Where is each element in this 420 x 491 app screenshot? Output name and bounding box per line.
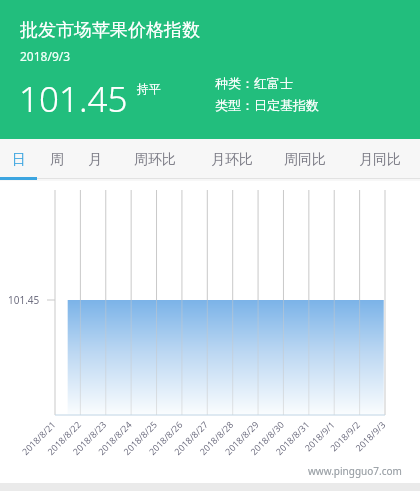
- staticText: 周同比: [284, 151, 326, 169]
- staticText: 周: [50, 151, 64, 169]
- button[interactable]: 月同比: [349, 139, 411, 181]
- staticText: 月: [88, 151, 102, 169]
- button[interactable]: 周环比: [124, 139, 186, 181]
- staticText: 101.45: [19, 75, 128, 123]
- button[interactable]: 日: [0, 139, 37, 181]
- button[interactable]: 月: [75, 139, 115, 181]
- staticText: 种类：红富士: [215, 75, 293, 91]
- button[interactable]: 周同比: [274, 139, 336, 181]
- staticText: 日: [12, 151, 26, 169]
- staticText: 批发市场苹果价格指数: [20, 19, 200, 42]
- staticText: 2018/9/3: [20, 48, 71, 64]
- staticText: 月环比: [211, 151, 253, 169]
- staticText: 周环比: [134, 151, 176, 169]
- staticText: 月同比: [359, 151, 401, 169]
- button[interactable]: 月环比: [201, 139, 263, 181]
- staticText: 类型：日定基指数: [215, 97, 319, 113]
- staticText: 持平: [137, 81, 161, 96]
- button[interactable]: 周: [38, 139, 76, 181]
